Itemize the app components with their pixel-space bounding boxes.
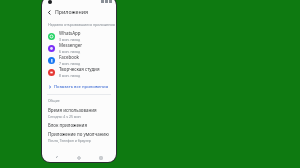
button[interactable]: Творческая студия YouTube xyxy=(42,66,116,78)
staticText: 7 мин. назад xyxy=(59,61,80,66)
button[interactable]: Назад xyxy=(45,8,53,16)
staticText: Блок приложения xyxy=(48,122,87,128)
staticText: Недавно открывавшиеся приложения xyxy=(48,22,115,27)
staticText: Facebook xyxy=(59,54,80,60)
button[interactable]: Messenger xyxy=(42,42,116,54)
button[interactable]: Показать все приложения (93) xyxy=(42,81,116,92)
button[interactable]: Главный экран xyxy=(72,153,86,162)
button[interactable]: Назад xyxy=(50,153,64,162)
staticText: Почта, Телефон и браузер xyxy=(48,138,91,143)
staticText: Сегодня: 4 ч 25 мин xyxy=(48,114,81,119)
button[interactable]: Блок приложения xyxy=(42,119,116,130)
button[interactable]: Приложение по умолчанию xyxy=(42,130,116,143)
staticText: 8 мин. назад xyxy=(59,73,80,78)
staticText: Время использования xyxy=(48,107,97,113)
staticText: WhatsApp xyxy=(59,30,81,36)
staticText: Творческая студия YouTube xyxy=(59,66,116,72)
button[interactable]: WhatsApp xyxy=(42,30,116,42)
staticText: Приложения xyxy=(55,8,88,15)
button[interactable]: Назад xyxy=(42,6,116,17)
staticText: Общие xyxy=(48,98,60,103)
button[interactable]: Обзор xyxy=(94,153,108,162)
staticText: Показать все приложения (93) xyxy=(54,84,116,90)
staticText: Приложение по умолчанию xyxy=(48,131,109,137)
staticText: Messenger xyxy=(59,42,83,48)
staticText: 6 мин. назад xyxy=(59,49,80,54)
staticText: 3 мин. назад xyxy=(59,37,80,42)
button[interactable]: Время использования xyxy=(42,106,116,119)
button[interactable]: Facebook xyxy=(42,54,116,66)
